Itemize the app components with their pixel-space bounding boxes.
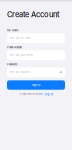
button[interactable]: Sign Up [7,80,65,90]
staticText: Enter your phone number [9,54,33,57]
button[interactable]: Log In [44,93,53,96]
staticText: Log In [44,93,53,96]
staticText: Full Name [7,29,18,32]
staticText: Sign Up [32,84,40,86]
staticText: Enter your password [9,71,29,74]
staticText: Create Account [7,10,60,19]
staticText: Already have an account? [18,93,43,96]
staticText: Phone Number [7,46,22,49]
staticText: Enter your full name [9,37,30,39]
staticText: Password [7,63,17,66]
